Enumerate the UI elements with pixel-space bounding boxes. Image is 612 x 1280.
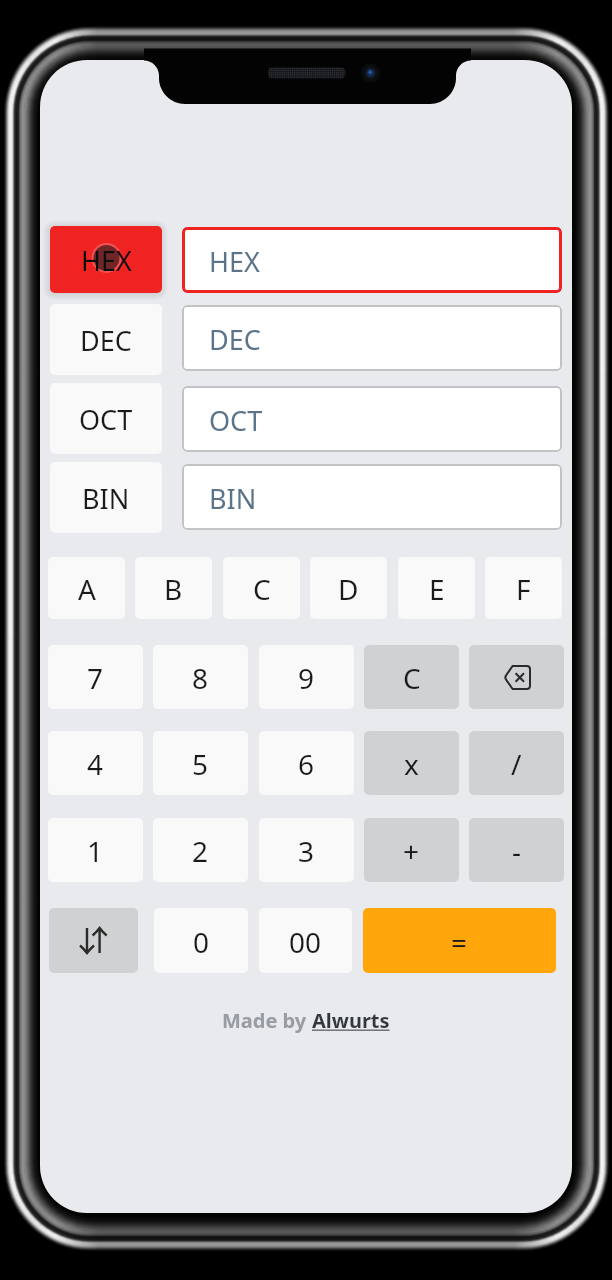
staticText: BIN	[82, 480, 130, 517]
button[interactable]: C	[223, 557, 300, 619]
staticText: -	[512, 832, 522, 870]
staticText: 5	[192, 745, 209, 783]
button[interactable]: C	[364, 645, 459, 709]
staticText: B	[164, 570, 183, 608]
button[interactable]: 00	[259, 908, 352, 973]
staticText: =	[451, 923, 468, 961]
button[interactable]: B	[135, 557, 212, 619]
button[interactable]: BIN	[50, 462, 162, 533]
button[interactable]: HEX	[182, 227, 562, 293]
button[interactable]: HEX	[50, 226, 162, 293]
staticText: OCT	[79, 401, 133, 438]
button[interactable]: DEC	[182, 305, 562, 371]
staticText: HEX	[209, 243, 260, 280]
button[interactable]: 9	[259, 645, 354, 709]
staticText: DEC	[80, 322, 132, 359]
button[interactable]: OCT	[182, 386, 562, 452]
staticText: C	[253, 570, 271, 608]
staticText: 4	[87, 745, 104, 783]
button[interactable]: E	[398, 557, 475, 619]
staticText: A	[78, 570, 96, 608]
button[interactable]: 4	[48, 731, 143, 795]
button[interactable]: 8	[153, 645, 248, 709]
staticText: E	[429, 570, 445, 608]
button[interactable]: D	[310, 557, 387, 619]
button[interactable]: +	[364, 818, 459, 882]
button[interactable]: 3	[259, 818, 354, 882]
button[interactable]: Alwurts	[312, 1007, 390, 1034]
button[interactable]: 7	[48, 645, 143, 709]
button[interactable]: Delete	[469, 645, 564, 709]
staticText: /	[511, 745, 522, 783]
staticText: 8	[192, 659, 209, 697]
staticText: 0	[193, 923, 210, 961]
staticText: 3	[298, 832, 315, 870]
staticText: 7	[87, 659, 104, 697]
button[interactable]: x	[364, 731, 459, 795]
staticText: DEC	[209, 321, 261, 358]
staticText: 2	[192, 832, 209, 870]
staticText: F	[516, 570, 531, 608]
button[interactable]: 6	[259, 731, 354, 795]
staticText: 1	[87, 832, 104, 870]
staticText: D	[338, 570, 359, 608]
button[interactable]: 2	[153, 818, 248, 882]
button[interactable]: BIN	[182, 464, 562, 530]
staticText: x	[404, 745, 419, 783]
button[interactable]: 1	[48, 818, 143, 882]
staticText: Made by	[222, 1007, 312, 1034]
staticText: +	[403, 832, 420, 870]
staticText: 00	[289, 923, 322, 961]
button[interactable]: /	[469, 731, 564, 795]
staticText: BIN	[209, 480, 257, 517]
staticText: HEX	[81, 242, 132, 279]
button[interactable]: A	[48, 557, 125, 619]
staticText: OCT	[209, 402, 263, 439]
staticText: C	[403, 659, 421, 697]
button[interactable]: DEC	[50, 304, 162, 375]
button[interactable]: -	[469, 818, 564, 882]
button[interactable]: 5	[153, 731, 248, 795]
button[interactable]: F	[485, 557, 562, 619]
staticText: 6	[298, 745, 315, 783]
button[interactable]: Swap	[49, 908, 138, 973]
staticText: 9	[298, 659, 315, 697]
button[interactable]: OCT	[50, 383, 162, 454]
button[interactable]: 0	[154, 908, 248, 973]
button[interactable]: =	[363, 908, 556, 973]
